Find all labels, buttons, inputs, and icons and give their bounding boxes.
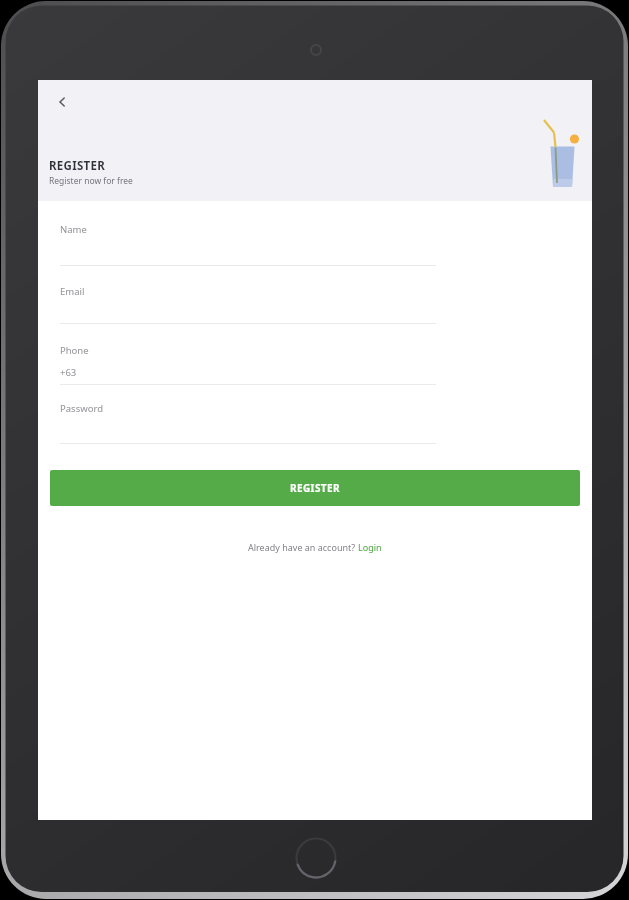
staticText: REGISTER [290,481,340,495]
staticText: Login [358,541,382,553]
staticText: Phone [60,344,89,357]
staticText: Already have an account? [248,541,358,553]
staticText: Email [60,285,85,298]
staticText: Name [60,223,87,236]
button[interactable]: REGISTER [50,470,580,506]
staticText: REGISTER [49,158,106,174]
button[interactable] [48,89,74,115]
button[interactable]: Login [358,541,382,553]
staticText: Password [60,402,103,415]
staticText: +63 [60,366,77,379]
staticText: Register now for free [49,175,133,187]
